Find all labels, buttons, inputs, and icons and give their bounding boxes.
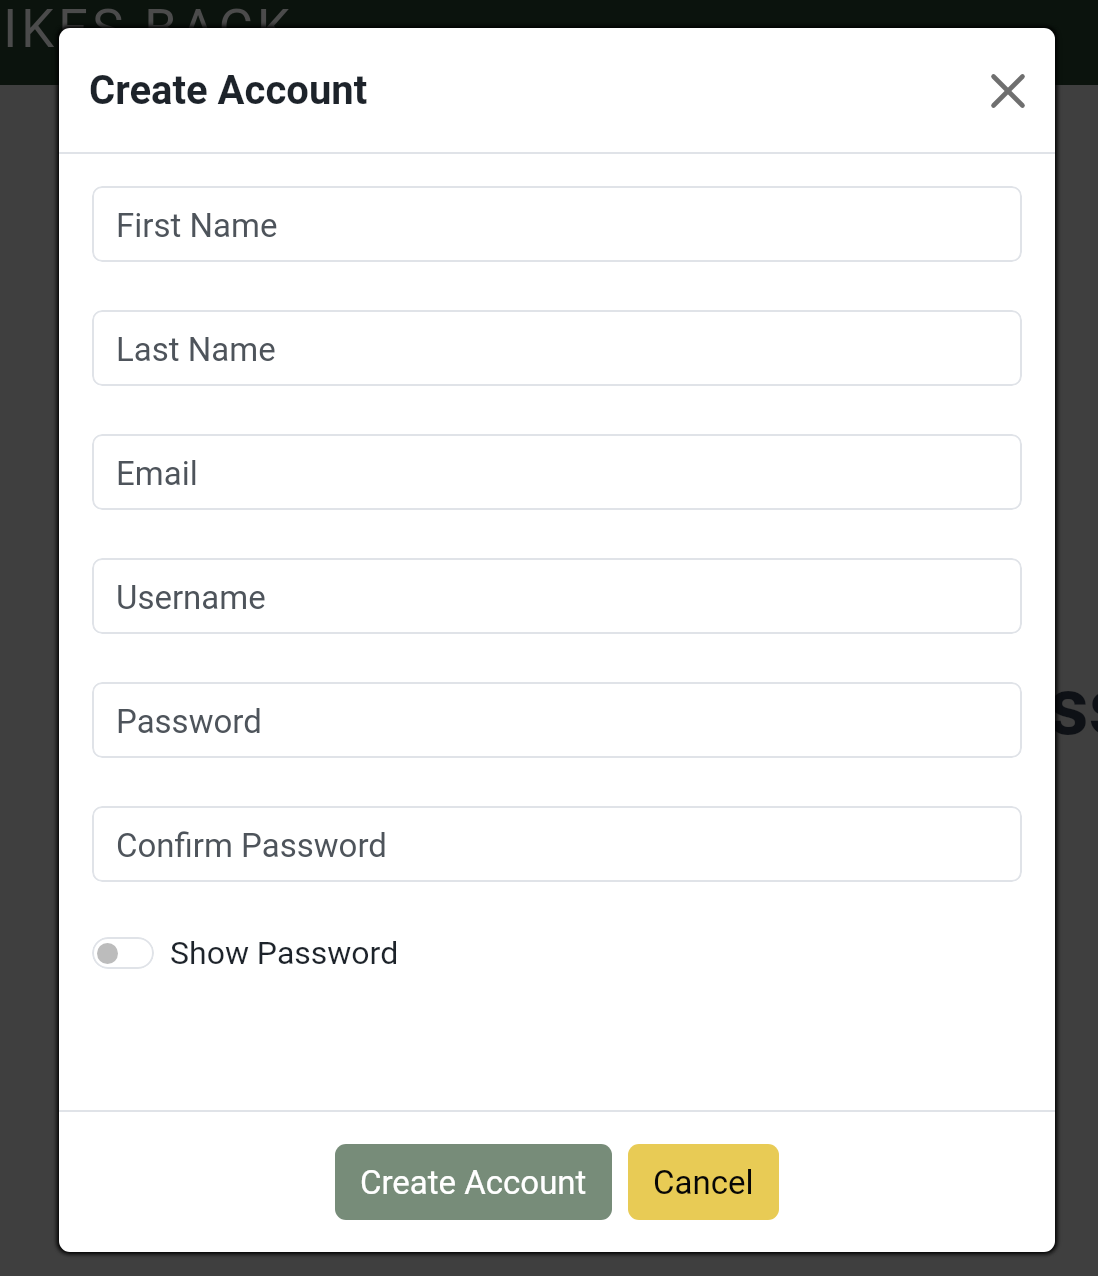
staticText: Create Account <box>360 1163 587 1202</box>
button[interactable]: Confirm Password <box>92 806 1022 882</box>
button[interactable]: First Name <box>92 186 1022 262</box>
staticText: Show Password <box>170 934 399 972</box>
button[interactable]: Create Account <box>335 1144 612 1220</box>
staticText: Cancel <box>653 1163 754 1202</box>
staticText: Password <box>116 702 262 741</box>
staticText: Username <box>116 578 266 617</box>
staticText: Create Account <box>89 67 368 114</box>
button[interactable]: Close <box>980 63 1036 119</box>
button[interactable]: Last Name <box>92 310 1022 386</box>
button[interactable]: Cancel <box>628 1144 779 1220</box>
staticText: Confirm Password <box>116 826 387 865</box>
staticText: ss <box>1048 661 1098 754</box>
staticText: First Name <box>116 206 278 245</box>
staticText: Email <box>116 454 198 493</box>
staticText: Last Name <box>116 330 276 369</box>
button[interactable]: Username <box>92 558 1022 634</box>
staticText: IKES BACK <box>3 0 294 60</box>
button[interactable]: Show Password <box>92 934 399 972</box>
button[interactable]: Email <box>92 434 1022 510</box>
button[interactable]: Password <box>92 682 1022 758</box>
